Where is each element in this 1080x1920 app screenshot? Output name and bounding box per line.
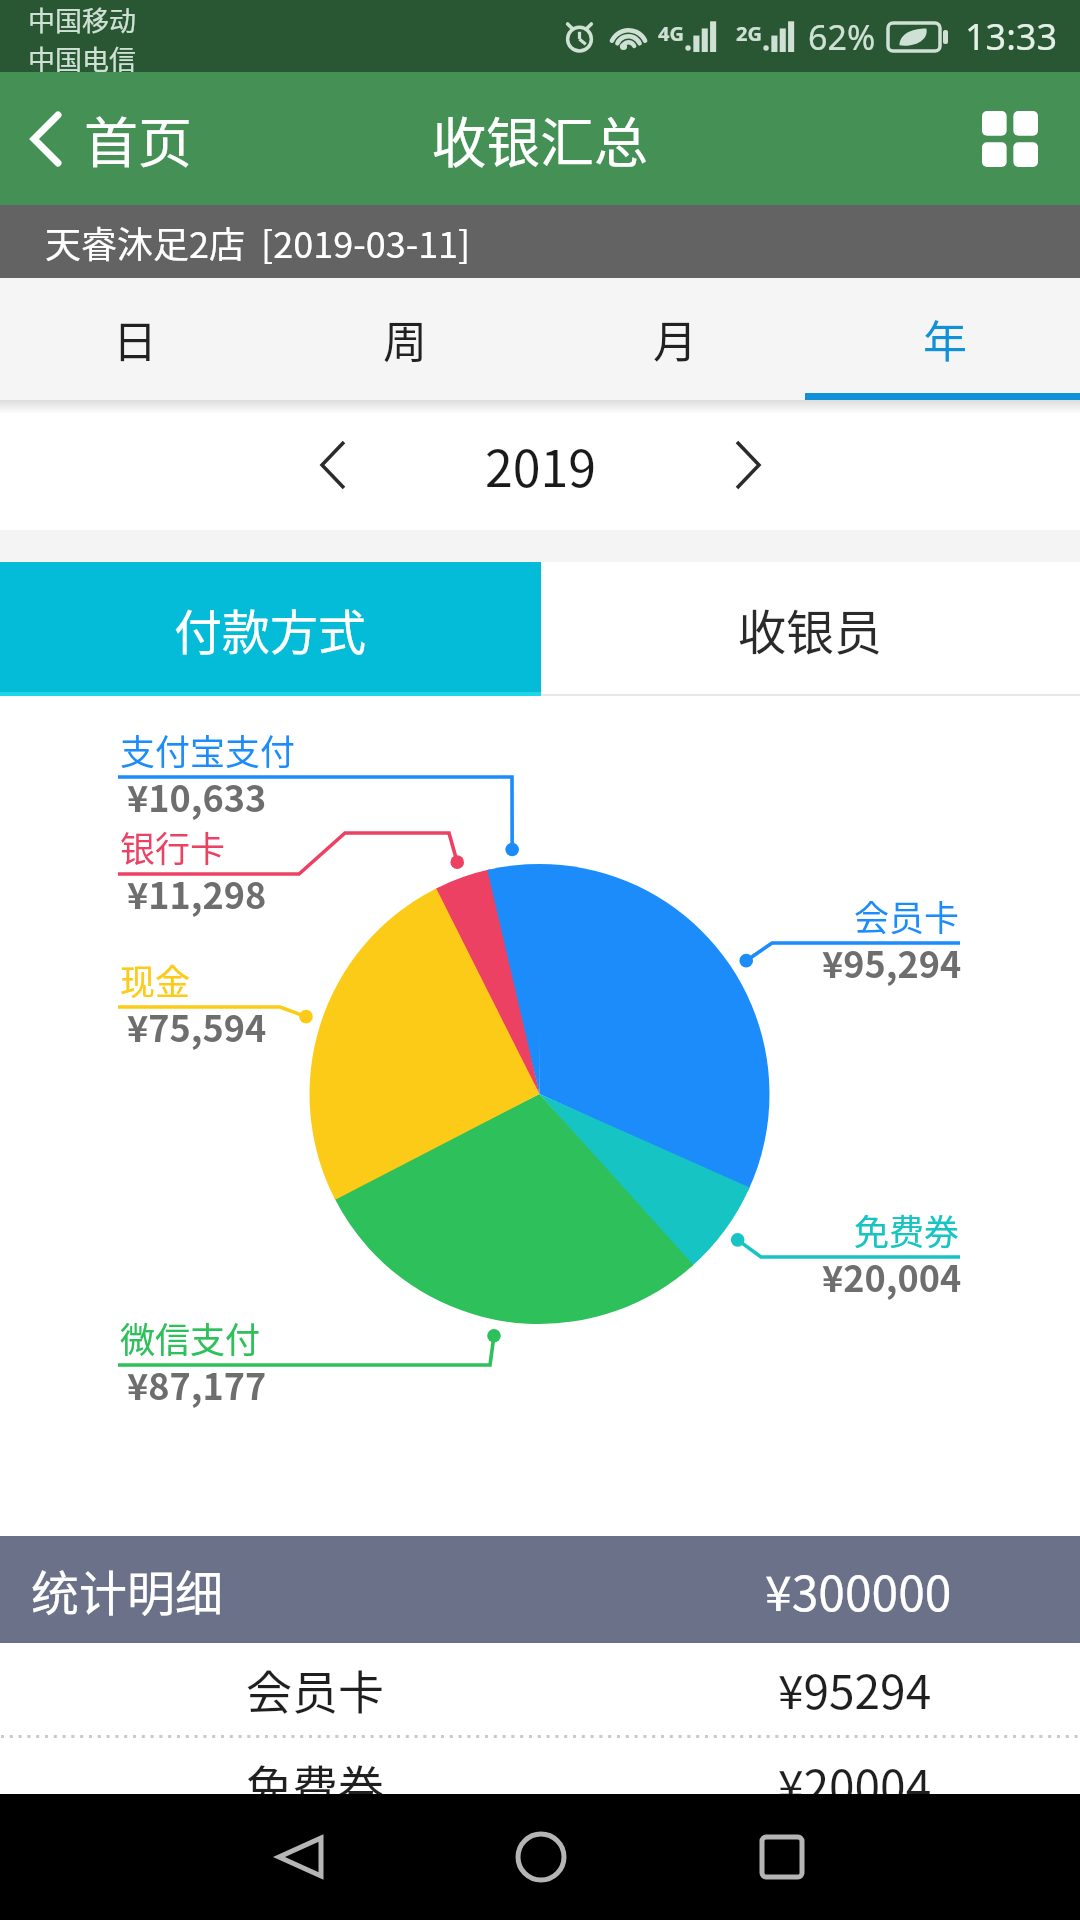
button[interactable]: 付款方式 bbox=[0, 562, 541, 696]
staticText: ¥20004 bbox=[778, 1751, 932, 1818]
staticText: 收银汇总 bbox=[432, 100, 648, 178]
staticText: 支付宝支付 bbox=[120, 724, 296, 775]
staticText: ¥95,294 bbox=[822, 936, 962, 988]
staticText: 首页 bbox=[84, 100, 192, 178]
button[interactable]: 首页 bbox=[0, 72, 226, 205]
staticText: 免费券 bbox=[246, 1751, 384, 1818]
staticText: 月 bbox=[653, 307, 697, 371]
staticText: 免费券 bbox=[854, 1204, 960, 1255]
staticText: 62% bbox=[808, 14, 876, 60]
staticText: ¥95294 bbox=[778, 1656, 932, 1723]
staticText: 日 bbox=[113, 307, 157, 371]
staticText: ¥300000 bbox=[765, 1555, 952, 1625]
staticText: 天睿沐足2店 [2019-03-11] bbox=[45, 216, 471, 268]
button[interactable]: 日 bbox=[0, 278, 270, 400]
staticText: 会员卡 bbox=[854, 890, 960, 941]
button[interactable]: Grid menu bbox=[940, 72, 1080, 205]
button[interactable]: Previous year bbox=[285, 417, 381, 513]
button[interactable]: Next year bbox=[700, 417, 796, 513]
staticText: 年 bbox=[923, 307, 967, 371]
staticText: 中国电信 bbox=[28, 39, 136, 72]
staticText: ¥75,594 bbox=[127, 1000, 267, 1052]
staticText: 会员卡 bbox=[246, 1656, 384, 1723]
staticText: 银行卡 bbox=[120, 821, 226, 872]
staticText: 4G bbox=[658, 20, 684, 47]
staticText: 统计明细 bbox=[31, 1555, 224, 1625]
button[interactable]: 周 bbox=[270, 278, 540, 400]
staticText: 13:33 bbox=[965, 12, 1058, 61]
button[interactable]: Home bbox=[486, 1802, 596, 1912]
staticText: 付款方式 bbox=[174, 594, 367, 664]
staticText: ¥10,633 bbox=[127, 770, 267, 822]
staticText: 周 bbox=[383, 307, 427, 371]
staticText: 现金 bbox=[120, 954, 191, 1005]
staticText: ¥20,004 bbox=[822, 1250, 962, 1302]
button[interactable]: 月 bbox=[540, 278, 810, 400]
staticText: ¥11,298 bbox=[127, 867, 267, 919]
staticText: 微信支付 bbox=[120, 1312, 261, 1363]
staticText: 中国移动 bbox=[28, 0, 136, 39]
staticText: ¥87,177 bbox=[127, 1358, 267, 1410]
button[interactable]: Recents bbox=[727, 1802, 837, 1912]
button[interactable]: 免费券 bbox=[0, 1738, 1080, 1830]
button[interactable]: 会员卡 bbox=[0, 1643, 1080, 1735]
button[interactable]: 年 bbox=[810, 278, 1080, 400]
button[interactable]: Back bbox=[245, 1802, 355, 1912]
staticText: 2019 bbox=[485, 429, 596, 501]
staticText: 2G bbox=[736, 20, 762, 47]
button[interactable]: 收银员 bbox=[541, 562, 1080, 696]
button[interactable]: 统计明细 bbox=[0, 1536, 1080, 1643]
staticText: 收银员 bbox=[738, 594, 883, 664]
